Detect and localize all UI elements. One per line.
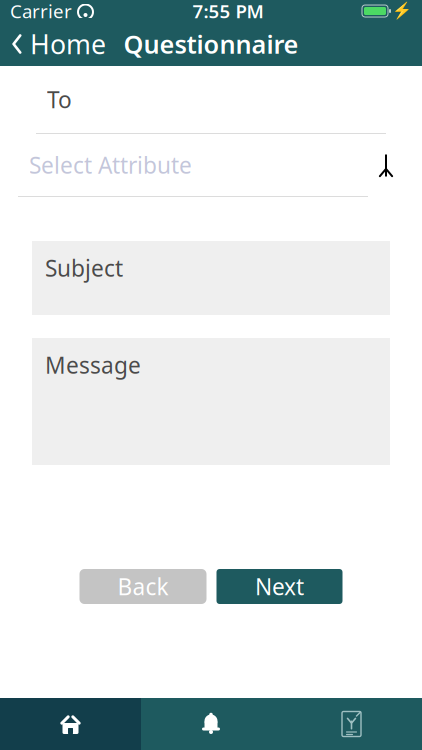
button[interactable]: Select Attribute — [18, 134, 404, 197]
button[interactable]: Back — [79, 569, 206, 604]
staticText: Carrier — [10, 0, 72, 23]
staticText: Back — [117, 571, 168, 601]
staticText: ⚡ — [392, 2, 412, 20]
staticText: Next — [255, 571, 304, 601]
button[interactable]: Home — [0, 698, 141, 750]
staticText: Message — [45, 350, 141, 380]
staticText: 7:55 PM — [192, 0, 263, 23]
staticText: Subject — [45, 253, 123, 283]
staticText: To — [47, 84, 72, 114]
button[interactable]: Upload document — [281, 698, 422, 750]
button[interactable]: Message — [32, 338, 390, 465]
button[interactable]: Home — [0, 22, 116, 66]
staticText: Questionnaire — [123, 27, 298, 61]
staticText: Select Attribute — [29, 150, 192, 180]
button[interactable]: To — [36, 66, 386, 134]
button[interactable]: Subject — [32, 241, 390, 315]
button[interactable]: Next — [216, 569, 342, 604]
button[interactable]: Notifications — [141, 698, 281, 750]
staticText: Home — [30, 26, 106, 62]
